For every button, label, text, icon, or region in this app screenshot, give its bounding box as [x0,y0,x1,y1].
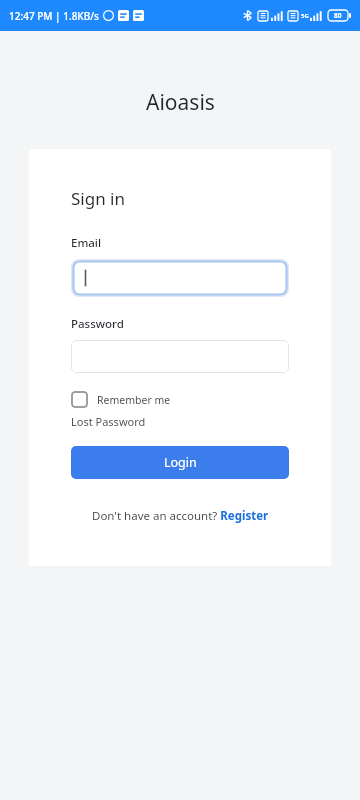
staticText: 80 [334,11,342,20]
staticText: Sign in [71,187,125,210]
staticText: Lost Password [71,414,146,429]
staticText: 12:47 PM | 1.8KB/s [9,9,99,23]
staticText: Email [71,235,102,251]
button[interactable]: Remember me [71,391,171,408]
staticText: Don't have an account? Register [92,508,269,524]
staticText: Login [164,454,197,471]
button[interactable]: Login [71,446,289,479]
button[interactable]: Don't have an account? Register [71,508,289,524]
button[interactable] [71,259,289,297]
staticText: Password [71,316,124,332]
button[interactable]: Lost Password [71,414,146,429]
staticText: 5G [301,12,309,20]
button[interactable] [71,340,289,373]
staticText: Aioasis [146,88,215,117]
staticText: Remember me [97,393,171,407]
